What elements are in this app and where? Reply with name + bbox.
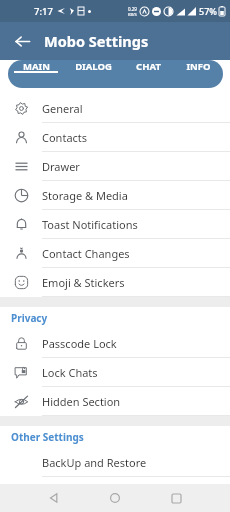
staticText: Contacts [42, 130, 88, 145]
staticText: Lock Chats [42, 365, 98, 380]
staticText: 57% [199, 5, 217, 17]
button[interactable]: General [0, 94, 230, 123]
staticText: Contact Changes [42, 246, 130, 261]
staticText: KB/S [128, 12, 137, 17]
button[interactable]: DIALOG [64, 60, 123, 73]
button[interactable]: Contacts [0, 123, 230, 152]
staticText: Mobo Settings [44, 31, 149, 51]
button[interactable]: Home [103, 486, 127, 510]
button[interactable]: Lock Chats [0, 358, 230, 387]
button[interactable]: Back [42, 486, 66, 510]
staticText: Passcode Lock [42, 336, 117, 351]
staticText: CHAT [136, 60, 161, 73]
button[interactable]: Passcode Lock [0, 329, 230, 358]
button[interactable]: CHAT [123, 60, 174, 73]
staticText: General [42, 101, 83, 116]
staticText: INFO [186, 60, 211, 73]
button[interactable]: MAIN [8, 60, 64, 73]
staticText: Hidden Section [42, 394, 121, 409]
button[interactable]: Drawer [0, 152, 230, 181]
staticText: Other Settings [11, 430, 84, 444]
staticText: 7:17 [34, 5, 53, 18]
button[interactable]: INFO [174, 60, 223, 73]
staticText: Toast Notifications [42, 217, 138, 232]
button[interactable]: Toast Notifications [0, 210, 230, 239]
button[interactable]: Recents [164, 486, 188, 510]
button[interactable]: BackUp and Restore [0, 448, 230, 477]
button[interactable]: Emoji & Stickers [0, 268, 230, 297]
staticText: Privacy [11, 311, 48, 325]
button[interactable]: Storage & Media [0, 181, 230, 210]
staticText: 0.29 [128, 6, 137, 12]
staticText: BackUp and Restore [42, 455, 147, 470]
staticText: Drawer [42, 159, 80, 174]
button[interactable]: Back [6, 25, 38, 57]
staticText: DIALOG [75, 60, 112, 73]
staticText: MAIN [23, 60, 50, 73]
button[interactable]: Contact Changes [0, 239, 230, 268]
button[interactable]: Hidden Section [0, 387, 230, 416]
staticText: Storage & Media [42, 188, 128, 203]
staticText: Emoji & Stickers [42, 275, 125, 290]
